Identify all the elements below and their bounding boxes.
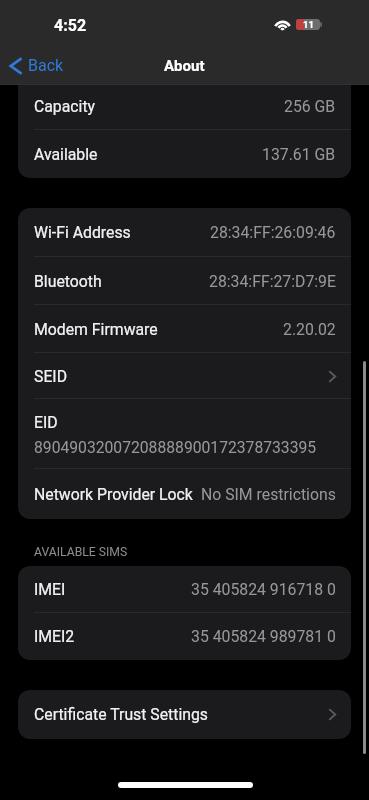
staticText: 11: [303, 19, 314, 30]
other: Battery 11 percent: [296, 19, 320, 30]
button[interactable]: Back: [6, 53, 67, 78]
staticText: 35 405824 989781 0: [191, 627, 336, 646]
button[interactable]: IMEI2: [18, 613, 351, 660]
staticText: Available: [34, 145, 98, 164]
other: Wi-Fi signal: [273, 18, 292, 30]
staticText: Certificate Trust Settings: [34, 705, 209, 724]
staticText: SEID: [34, 367, 68, 386]
staticText: Wi-Fi Address: [34, 223, 131, 242]
button[interactable]: IMEI: [18, 566, 351, 613]
staticText: 28:34:FF:27:D7:9E: [209, 272, 336, 291]
staticText: No SIM restrictions: [201, 485, 336, 504]
button[interactable]: Network Provider Lock: [18, 469, 351, 519]
staticText: 256 GB: [284, 97, 336, 116]
staticText: Bluetooth: [34, 272, 102, 291]
button[interactable]: SEID: [18, 353, 351, 399]
staticText: 137.61 GB: [262, 145, 336, 164]
staticText: IMEI2: [34, 627, 75, 646]
staticText: EID: [34, 413, 58, 432]
staticText: Modem Firmware: [34, 320, 158, 339]
staticText: 4:52: [54, 16, 87, 35]
staticText: Network Provider Lock: [34, 485, 193, 504]
button[interactable]: Capacity: [18, 82, 351, 130]
button[interactable]: Certificate Trust Settings: [18, 690, 351, 739]
button[interactable]: Available: [18, 130, 351, 178]
staticText: 28:34:FF:26:09:46: [210, 223, 336, 242]
staticText: Back: [28, 56, 64, 75]
button[interactable]: EID: [18, 399, 351, 469]
button[interactable]: Modem Firmware: [18, 305, 351, 353]
staticText: 89049032007208888900172378733395: [34, 438, 317, 456]
staticText: 2.20.02: [283, 320, 336, 339]
staticText: 35 405824 916718 0: [191, 580, 336, 599]
staticText: About: [164, 57, 205, 75]
button[interactable]: Bluetooth: [18, 257, 351, 305]
button[interactable]: Wi-Fi Address: [18, 208, 351, 257]
staticText: Capacity: [34, 97, 96, 116]
staticText: AVAILABLE SIMS: [34, 545, 128, 559]
staticText: IMEI: [34, 580, 66, 599]
